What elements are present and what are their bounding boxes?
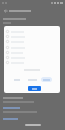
button[interactable] xyxy=(4,55,60,60)
button[interactable]: Navigate up xyxy=(2,7,10,15)
button[interactable] xyxy=(4,60,60,65)
button[interactable] xyxy=(4,45,60,50)
button[interactable] xyxy=(4,29,60,34)
button[interactable] xyxy=(9,7,33,15)
button[interactable] xyxy=(28,77,37,82)
button[interactable] xyxy=(4,39,60,44)
button[interactable] xyxy=(14,77,20,82)
button[interactable] xyxy=(28,86,41,91)
button[interactable] xyxy=(4,50,60,55)
button[interactable] xyxy=(4,34,60,39)
button[interactable] xyxy=(41,77,52,82)
